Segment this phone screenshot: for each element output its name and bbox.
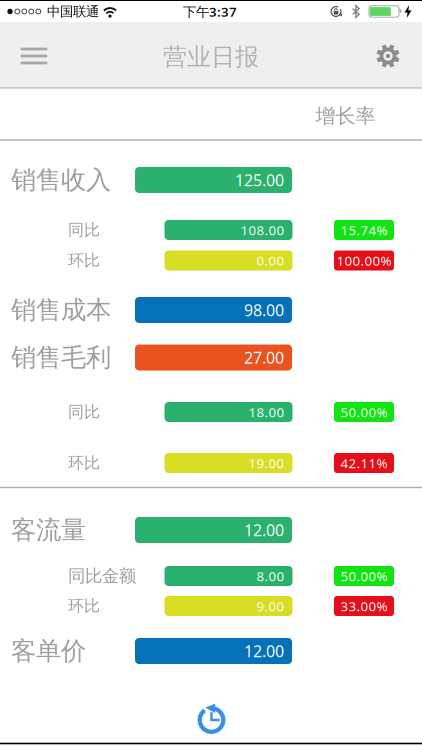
staticText: 同比 (68, 402, 100, 422)
button[interactable]: Menu (12, 36, 56, 76)
staticText: 客单价 (11, 635, 86, 666)
staticText: 同比 (68, 220, 100, 240)
staticText: 15.74% (340, 221, 387, 239)
staticText: 9.00 (256, 597, 284, 615)
staticText: 客流量 (11, 514, 86, 545)
staticText: 营业日报 (163, 42, 259, 72)
staticText: 33.00% (340, 597, 387, 615)
staticText: 销售毛利 (11, 342, 111, 373)
staticText: 125.00 (235, 169, 284, 191)
staticText: 下午3:37 (183, 3, 237, 20)
button[interactable]: Settings (366, 36, 410, 76)
staticText: 19.00 (248, 454, 284, 472)
button[interactable]: Refresh (189, 699, 233, 741)
staticText: 98.00 (244, 299, 284, 321)
staticText: 50.00% (340, 403, 387, 421)
staticText: 销售成本 (11, 294, 111, 325)
staticText: 环比 (68, 596, 100, 616)
staticText: 42.11% (340, 454, 387, 472)
staticText: 销售收入 (11, 164, 111, 195)
staticText: 12.00 (244, 519, 284, 541)
staticText: 环比 (68, 453, 100, 473)
staticText: 8.00 (256, 567, 284, 585)
staticText: 100.00% (336, 252, 391, 269)
staticText: 18.00 (248, 403, 284, 421)
staticText: 0.00 (256, 252, 284, 269)
staticText: 108.00 (240, 221, 284, 239)
staticText: 同比金额 (68, 565, 136, 587)
staticText: 50.00% (340, 567, 387, 585)
staticText: 增长率 (315, 104, 375, 128)
staticText: 12.00 (244, 640, 284, 662)
staticText: 27.00 (244, 347, 284, 368)
staticText: 中国联通 (47, 3, 99, 20)
staticText: 环比 (68, 251, 100, 270)
